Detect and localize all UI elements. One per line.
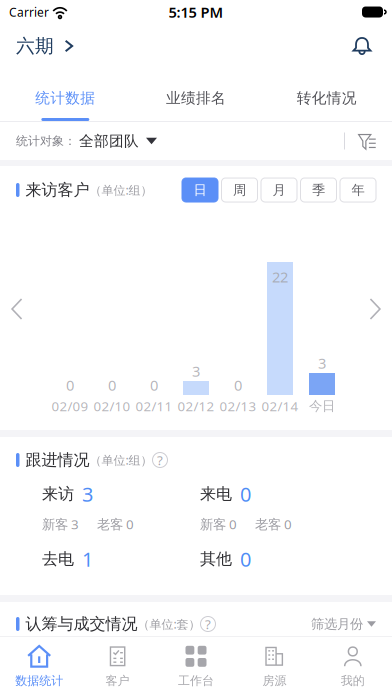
staticText: 日: [193, 182, 206, 198]
staticText: 02/14: [261, 397, 298, 415]
staticText: 1: [82, 546, 93, 572]
button[interactable]: 我的: [314, 636, 392, 696]
staticText: 工作台: [178, 673, 214, 688]
button[interactable]: 六期: [0, 24, 85, 68]
button[interactable]: 日: [182, 178, 218, 202]
staticText: 数据统计: [15, 673, 63, 688]
staticText: 其他: [200, 549, 232, 569]
staticText: 认筹与成交情况: [25, 614, 137, 634]
staticText: 0: [240, 546, 251, 572]
button[interactable]: Next period: [358, 269, 392, 349]
staticText: ?: [157, 451, 163, 469]
button[interactable]: 统计数据: [0, 68, 131, 121]
staticText: 去电: [42, 549, 74, 569]
staticText: 筛选月份: [311, 616, 363, 632]
staticText: 全部团队: [79, 132, 139, 150]
staticText: Carrier: [9, 4, 49, 20]
staticText: 我的: [341, 673, 365, 688]
staticText: 今日: [309, 398, 335, 414]
staticText: （单位:套）: [137, 616, 200, 632]
staticText: 老客 0: [97, 515, 134, 533]
staticText: 0: [240, 481, 251, 507]
staticText: 0: [150, 375, 158, 395]
staticText: 统计数据: [35, 89, 95, 107]
staticText: 02/10: [93, 397, 130, 415]
staticText: （单位:组）: [89, 182, 152, 198]
staticText: 年: [351, 182, 364, 198]
staticText: 02/09: [51, 397, 88, 415]
staticText: 月: [272, 182, 285, 198]
button[interactable]: 月: [261, 178, 297, 202]
staticText: 周: [233, 182, 246, 198]
staticText: 客户: [106, 673, 130, 688]
staticText: 新客 0: [200, 515, 237, 533]
staticText: 来访: [42, 484, 74, 504]
staticText: 房源: [262, 673, 286, 688]
button[interactable]: Filter: [345, 122, 389, 160]
staticText: 0: [66, 375, 74, 395]
button[interactable]: 房源: [235, 636, 314, 696]
staticText: 转化情况: [297, 89, 357, 107]
staticText: 02/13: [219, 397, 256, 415]
staticText: 3: [82, 481, 93, 507]
staticText: 六期: [16, 34, 54, 57]
staticText: 3: [192, 361, 200, 381]
staticText: 02/12: [177, 397, 214, 415]
staticText: 0: [234, 375, 242, 395]
staticText: 跟进情况: [25, 450, 89, 470]
button[interactable]: 业绩排名: [131, 68, 261, 121]
staticText: 老客 0: [255, 515, 292, 533]
button[interactable]: Notifications: [340, 24, 384, 68]
staticText: 22: [272, 267, 288, 286]
staticText: 业绩排名: [166, 89, 226, 107]
staticText: 3: [318, 353, 326, 373]
button[interactable]: 转化情况: [261, 68, 392, 121]
button[interactable]: 客户: [78, 636, 157, 696]
staticText: 02/11: [135, 397, 172, 415]
button[interactable]: 数据统计: [0, 636, 78, 696]
staticText: 5:15 PM: [168, 2, 223, 22]
staticText: 统计对象：: [16, 134, 76, 148]
button[interactable]: 统计对象：: [0, 122, 157, 160]
button[interactable]: Previous period: [0, 269, 34, 349]
button[interactable]: 工作台: [157, 636, 235, 696]
staticText: 来电: [200, 484, 232, 504]
staticText: 季: [312, 182, 325, 198]
staticText: 0: [108, 375, 116, 395]
button[interactable]: 周: [221, 178, 257, 202]
staticText: ?: [205, 615, 211, 633]
staticText: 新客 3: [42, 515, 79, 533]
staticText: （单位:组）: [89, 452, 152, 468]
button[interactable]: 季: [300, 178, 336, 202]
staticText: 来访客户: [25, 180, 89, 200]
button[interactable]: 年: [340, 178, 376, 202]
